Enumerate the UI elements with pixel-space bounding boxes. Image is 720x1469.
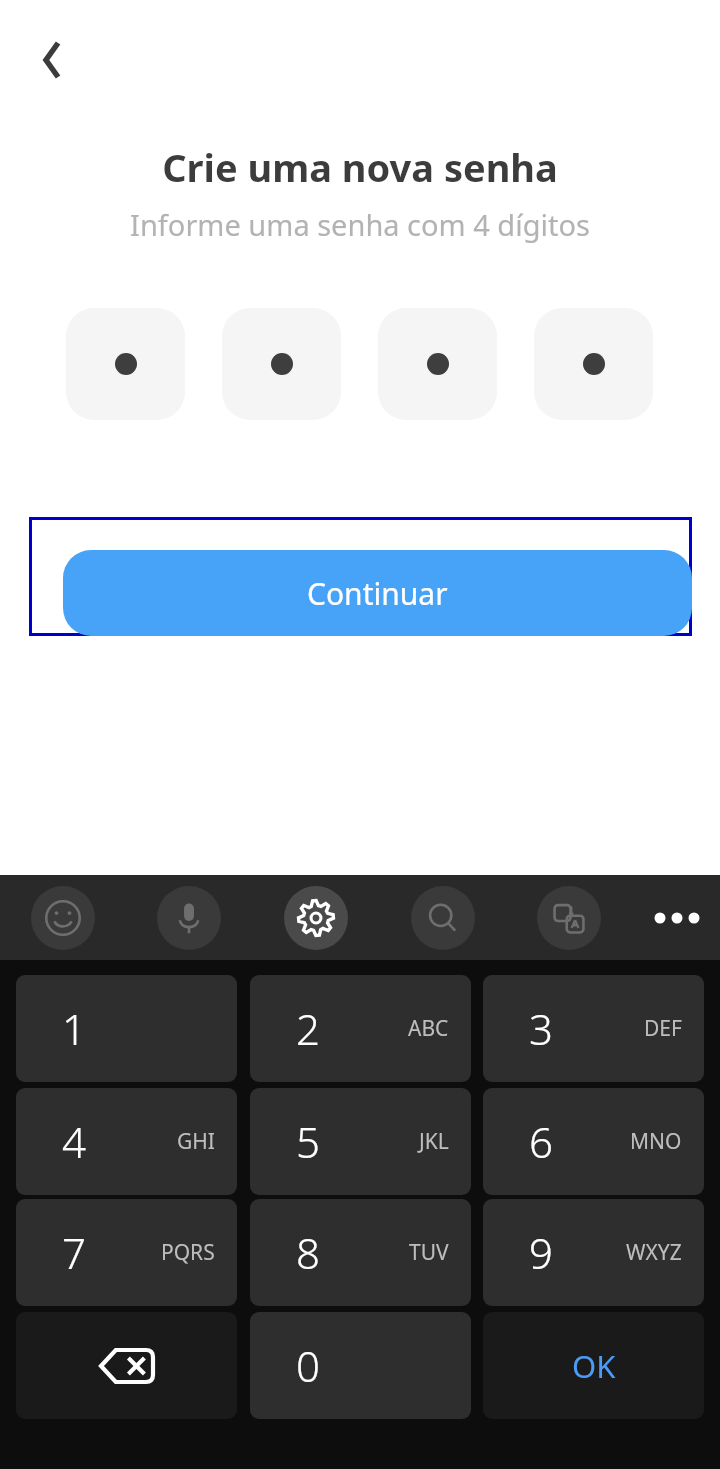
button[interactable]: PIN digit 4 [534, 308, 653, 420]
button[interactable]: More options [645, 886, 709, 950]
staticText: Informe uma senha com 4 dígitos [0, 205, 720, 244]
staticText: JKL [419, 1127, 449, 1156]
button[interactable]: PIN digit 3 [378, 308, 497, 420]
staticText: Crie uma nova senha [0, 141, 720, 193]
button[interactable]: PIN digit 2 [222, 308, 341, 420]
button[interactable]: 5 [250, 1088, 471, 1195]
staticText: DEF [644, 1014, 682, 1043]
button[interactable]: 4 [16, 1088, 237, 1195]
button[interactable]: Search [411, 886, 475, 950]
button[interactable]: 1 [16, 975, 237, 1082]
button[interactable]: Settings [284, 886, 348, 950]
staticText: 7 [62, 1224, 86, 1281]
button[interactable]: Continuar [29, 517, 692, 636]
button[interactable]: 3 [483, 975, 704, 1082]
staticText: TUV [409, 1238, 449, 1267]
staticText: 0 [296, 1337, 320, 1394]
staticText: GHI [177, 1127, 215, 1156]
button[interactable]: Back [22, 30, 82, 90]
button[interactable]: 0 [250, 1312, 471, 1419]
staticText: 4 [62, 1113, 86, 1170]
staticText: OK [572, 1345, 616, 1387]
staticText: WXYZ [626, 1238, 682, 1267]
staticText: MNO [630, 1127, 682, 1156]
button[interactable]: Emoji [31, 886, 95, 950]
staticText: 6 [529, 1113, 553, 1170]
button[interactable]: 7 [16, 1199, 237, 1306]
staticText: ABC [408, 1014, 449, 1043]
button[interactable]: 6 [483, 1088, 704, 1195]
staticText: 3 [529, 1000, 553, 1057]
staticText: 1 [62, 1000, 86, 1057]
staticText: 9 [529, 1224, 553, 1281]
staticText: 5 [296, 1113, 320, 1170]
staticText: 8 [296, 1224, 320, 1281]
button[interactable]: Backspace [16, 1312, 237, 1419]
button[interactable]: 2 [250, 975, 471, 1082]
staticText: 2 [296, 1000, 320, 1057]
button[interactable]: Translate [537, 886, 601, 950]
staticText: PQRS [161, 1238, 215, 1267]
button[interactable]: 9 [483, 1199, 704, 1306]
button[interactable]: 8 [250, 1199, 471, 1306]
button[interactable]: PIN digit 1 [66, 308, 185, 420]
button[interactable]: Voice input [157, 886, 221, 950]
staticText: Continuar [307, 573, 448, 614]
button[interactable]: OK [483, 1312, 704, 1419]
